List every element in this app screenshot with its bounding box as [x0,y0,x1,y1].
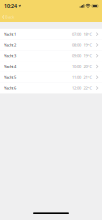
button[interactable]: Yacht 4 [0,61,102,72]
staticText: 22°C [83,85,92,91]
staticText: Yacht 1 [4,31,16,37]
staticText: 12:00 [72,85,81,91]
staticText: 08:00 [72,42,81,48]
button[interactable]: Yacht 5 [0,72,102,83]
staticText: Yacht 6 [4,85,16,91]
button[interactable]: Yacht 6 [0,83,102,93]
staticText: 21°C [83,75,92,80]
staticText: Yacht 4 [4,64,16,69]
staticText: 11:00 [72,75,81,80]
button[interactable]: Yacht 1 [0,29,102,40]
staticText: 18°C [83,31,92,37]
button[interactable]: Back [0,12,17,22]
button[interactable]: Yacht 3 [0,50,102,61]
staticText: Yacht 3 [4,53,16,58]
staticText: 10:24 [4,2,17,10]
staticText: Yacht 5 [4,75,16,80]
button[interactable]: Yacht 2 [0,40,102,50]
staticText: 10:00 [72,64,81,69]
staticText: 09:00 [72,53,81,58]
staticText: Yacht 2 [4,42,16,48]
staticText: 19°C [83,42,92,48]
staticText: 19°C [83,53,92,58]
staticText: Back [5,14,14,20]
staticText: 07:00 [72,31,81,37]
staticText: 20°C [83,64,92,69]
